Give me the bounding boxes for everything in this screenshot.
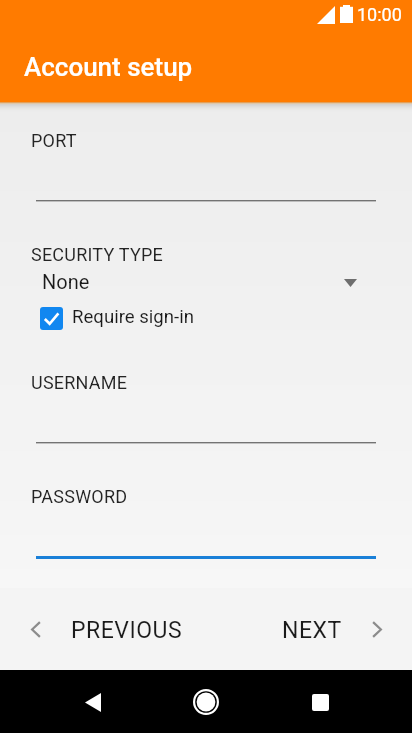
staticText: PASSWORD <box>31 486 128 507</box>
staticText: PREVIOUS <box>71 617 183 644</box>
staticText: None <box>42 270 90 293</box>
button[interactable]: Back <box>69 678 117 726</box>
button[interactable]: Home <box>182 678 230 726</box>
staticText: Account setup <box>24 52 193 82</box>
button[interactable]: Recent apps <box>296 678 344 726</box>
staticText: USERNAME <box>31 372 128 393</box>
staticText: NEXT <box>282 617 342 644</box>
button[interactable]: PREVIOUS <box>16 600 196 656</box>
button[interactable]: NEXT <box>268 600 396 656</box>
staticText: PORT <box>31 130 77 151</box>
button[interactable]: None <box>0 269 412 299</box>
button[interactable]: Require sign-in <box>40 303 195 326</box>
staticText: Require sign-in <box>72 306 195 328</box>
staticText: 10:00 <box>357 4 402 25</box>
staticText: SECURITY TYPE <box>31 244 163 265</box>
